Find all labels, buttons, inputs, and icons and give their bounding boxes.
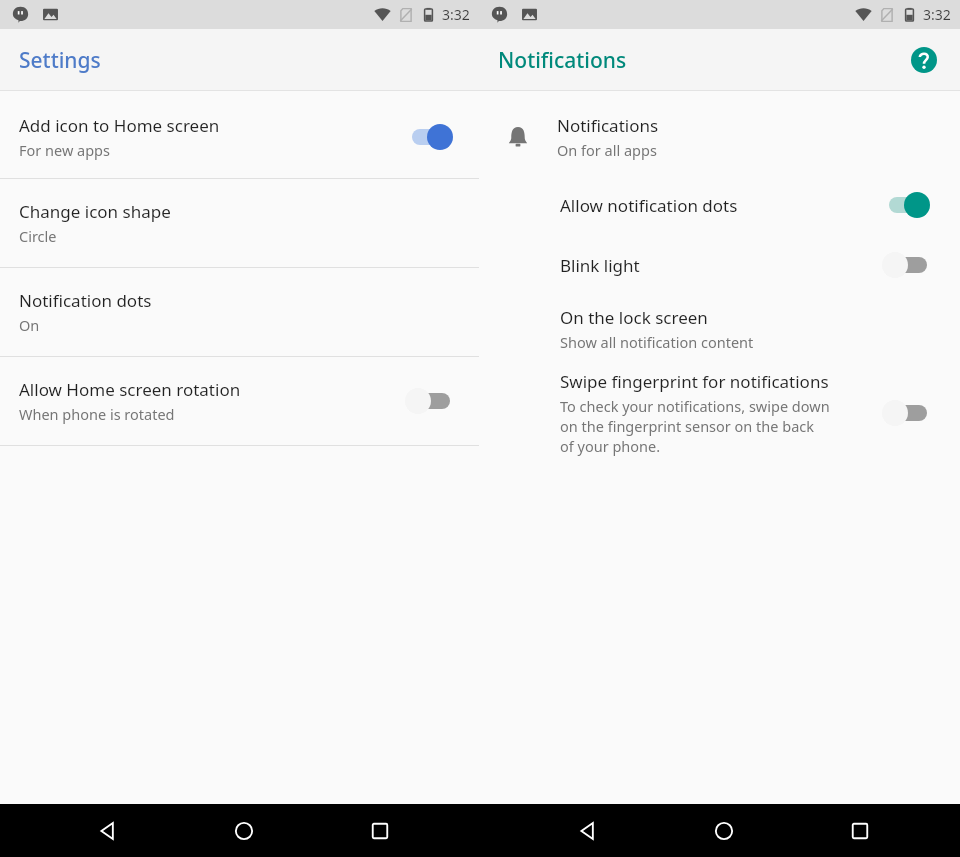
button[interactable]: Recents [356, 807, 404, 855]
button[interactable]: Help [906, 42, 942, 78]
staticText: On the lock screen [560, 306, 708, 329]
button[interactable]: Allow Home screen rotation [0, 357, 479, 445]
staticText: Show all notification content [560, 332, 754, 352]
button[interactable]: On the lock screen [479, 294, 960, 364]
button[interactable]: Swipe fingerprint for notifications [479, 364, 960, 462]
staticText: On for all apps [557, 140, 657, 160]
button[interactable]: Off [882, 250, 934, 280]
button[interactable]: Home [220, 807, 268, 855]
button[interactable]: Back [564, 807, 612, 855]
button[interactable]: Notifications [479, 100, 960, 174]
staticText: Blink light [560, 254, 640, 277]
staticText: 3:32 [442, 5, 470, 24]
button[interactable]: Add icon to Home screen [0, 96, 479, 178]
staticText: On [19, 315, 40, 335]
staticText: Change icon shape [19, 200, 171, 223]
button[interactable]: Home [700, 807, 748, 855]
staticText: To check your notifications, swipe down … [560, 396, 830, 456]
button[interactable]: Notification dots [0, 268, 479, 356]
staticText: Add icon to Home screen [19, 114, 220, 137]
button[interactable]: Off [882, 398, 934, 428]
staticText: 3:32 [923, 5, 951, 24]
staticText: Notification dots [19, 289, 152, 312]
staticText: Swipe fingerprint for notifications [560, 370, 829, 393]
button[interactable]: Recents [836, 807, 884, 855]
button[interactable]: On [882, 190, 934, 220]
staticText: When phone is rotated [19, 404, 175, 424]
button[interactable]: Change icon shape [0, 179, 479, 267]
staticText: Notifications [557, 114, 659, 137]
staticText: Notifications [498, 46, 627, 75]
staticText: Circle [19, 226, 57, 246]
button[interactable]: Blink light [479, 236, 960, 294]
staticText: Allow Home screen rotation [19, 378, 241, 401]
button[interactable]: On [405, 122, 457, 152]
staticText: Settings [19, 46, 101, 75]
button[interactable]: Allow notification dots [479, 174, 960, 236]
staticText: Allow notification dots [560, 194, 738, 217]
button[interactable]: Back [84, 807, 132, 855]
button[interactable]: Off [405, 386, 457, 416]
staticText: For new apps [19, 140, 110, 160]
